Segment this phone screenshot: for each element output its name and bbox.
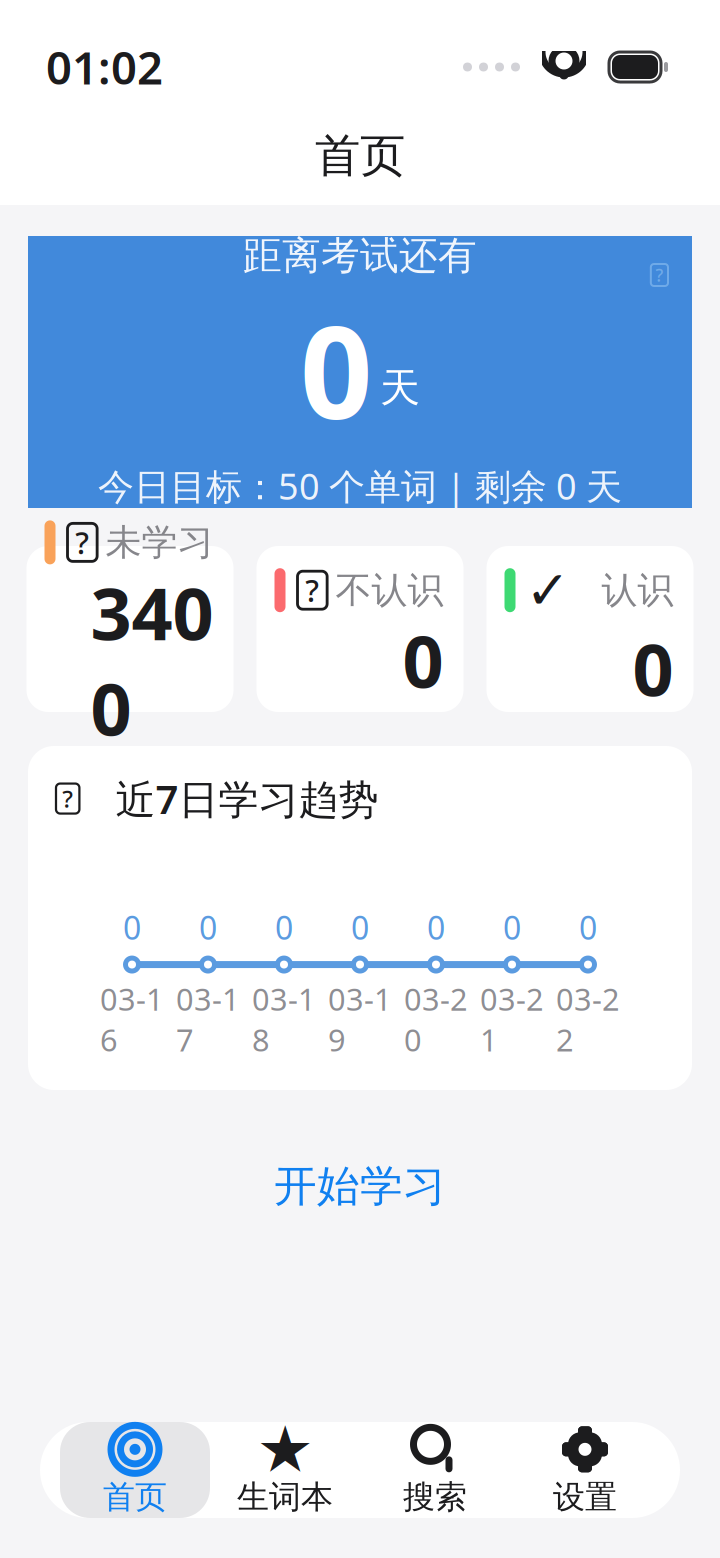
staticText: ? — [305, 570, 319, 610]
staticText: 开始学习 — [274, 1160, 446, 1212]
staticText: ? — [62, 783, 73, 814]
staticText: ★ — [256, 1413, 313, 1486]
button[interactable]: 首页 — [60, 1422, 210, 1518]
staticText: 03-17 — [176, 979, 240, 1060]
staticText: 0 — [503, 906, 521, 949]
staticText: 0 — [351, 906, 369, 949]
staticText: 0 — [579, 906, 597, 949]
staticText: 首页 — [103, 1477, 167, 1517]
staticText: 0 — [275, 906, 293, 949]
staticText: 3400 — [90, 564, 213, 756]
button[interactable]: ? — [256, 546, 463, 712]
staticText: 03-16 — [100, 979, 164, 1060]
staticText: 搜索 — [403, 1477, 467, 1517]
staticText: 设置 — [553, 1477, 617, 1517]
staticText: 生词本 — [237, 1477, 333, 1517]
staticText: 天 — [380, 363, 420, 412]
staticText: 距离考试还有 — [243, 232, 477, 280]
staticText: ✓ — [525, 560, 570, 620]
staticText: 今日目标：50 个单词 | 剩余 0 天 — [98, 462, 622, 510]
staticText: 0 — [300, 286, 372, 454]
staticText: 0 — [427, 906, 445, 949]
staticText: 03-21 — [480, 979, 544, 1060]
staticText: 0 — [402, 612, 443, 708]
button[interactable]: ? — [26, 546, 233, 712]
staticText: 首页 — [315, 128, 405, 184]
staticText: 认识 — [601, 568, 673, 612]
staticText: 03-18 — [252, 979, 316, 1060]
staticText: 0 — [632, 620, 673, 716]
staticText: 近7日学习趋势 — [115, 772, 378, 825]
staticText: 03-20 — [404, 979, 468, 1060]
button[interactable]: 开始学习 — [234, 1144, 486, 1228]
staticText: 0 — [123, 906, 141, 949]
staticText: 01:02 — [46, 37, 163, 97]
staticText: 0 — [199, 906, 217, 949]
staticText: ? — [75, 522, 89, 563]
staticText: 03-22 — [556, 979, 620, 1060]
staticText: 03-19 — [328, 979, 392, 1060]
button[interactable]: ★ — [210, 1422, 360, 1518]
staticText: 未学习 — [105, 520, 213, 564]
staticText: 不认识 — [335, 568, 443, 612]
button[interactable]: 搜索 — [360, 1422, 510, 1518]
button[interactable]: 设置 — [510, 1422, 660, 1518]
button[interactable]: ✓ — [486, 546, 693, 712]
staticText: ? — [655, 263, 663, 286]
